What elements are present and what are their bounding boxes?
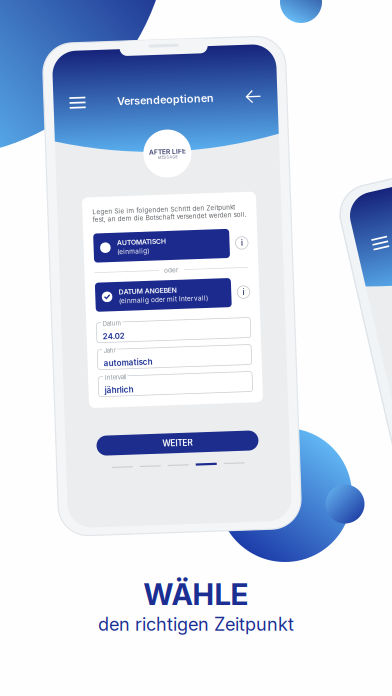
staticText: 24.02 bbox=[101, 329, 123, 339]
staticText: WÄHLE bbox=[143, 577, 248, 612]
button[interactable]: WEITER bbox=[91, 433, 253, 453]
staticText: AUTOMATISCH bbox=[118, 237, 167, 245]
staticText: den richtigen Zeitpunkt bbox=[98, 613, 294, 635]
staticText: Intervall bbox=[101, 372, 122, 379]
staticText: i bbox=[242, 241, 244, 250]
button[interactable]: DATUM ANGEBEN bbox=[95, 280, 231, 309]
staticText: (einmalig) bbox=[118, 246, 150, 254]
staticText: automatisch bbox=[101, 356, 150, 366]
button[interactable]: 24.02 bbox=[95, 320, 249, 340]
staticText: MESSAGE bbox=[162, 155, 182, 159]
button[interactable]: jährlich bbox=[95, 374, 249, 394]
staticText: AFTER LIFE bbox=[153, 147, 190, 156]
staticText: Versendeoptionen bbox=[123, 93, 220, 106]
staticText: oder bbox=[164, 266, 179, 274]
staticText: Legen Sie im folgenden Schritt den Zeitp… bbox=[95, 205, 249, 221]
button[interactable]: Menu bbox=[72, 87, 96, 111]
staticText: Jahr bbox=[101, 345, 113, 352]
button[interactable]: Info bbox=[237, 239, 249, 252]
staticText: jährlich bbox=[101, 383, 130, 393]
staticText: DATUM ANGEBEN bbox=[118, 286, 176, 294]
staticText: (einmalig oder mit Intervall) bbox=[118, 295, 207, 303]
staticText: WEITER bbox=[157, 438, 187, 448]
staticText: i bbox=[242, 290, 244, 299]
button[interactable]: automatisch bbox=[95, 347, 249, 367]
staticText: Datum bbox=[101, 318, 119, 325]
button[interactable]: AUTOMATISCH bbox=[95, 231, 231, 260]
button[interactable]: Info bbox=[237, 288, 249, 301]
button[interactable]: Back bbox=[248, 87, 272, 111]
